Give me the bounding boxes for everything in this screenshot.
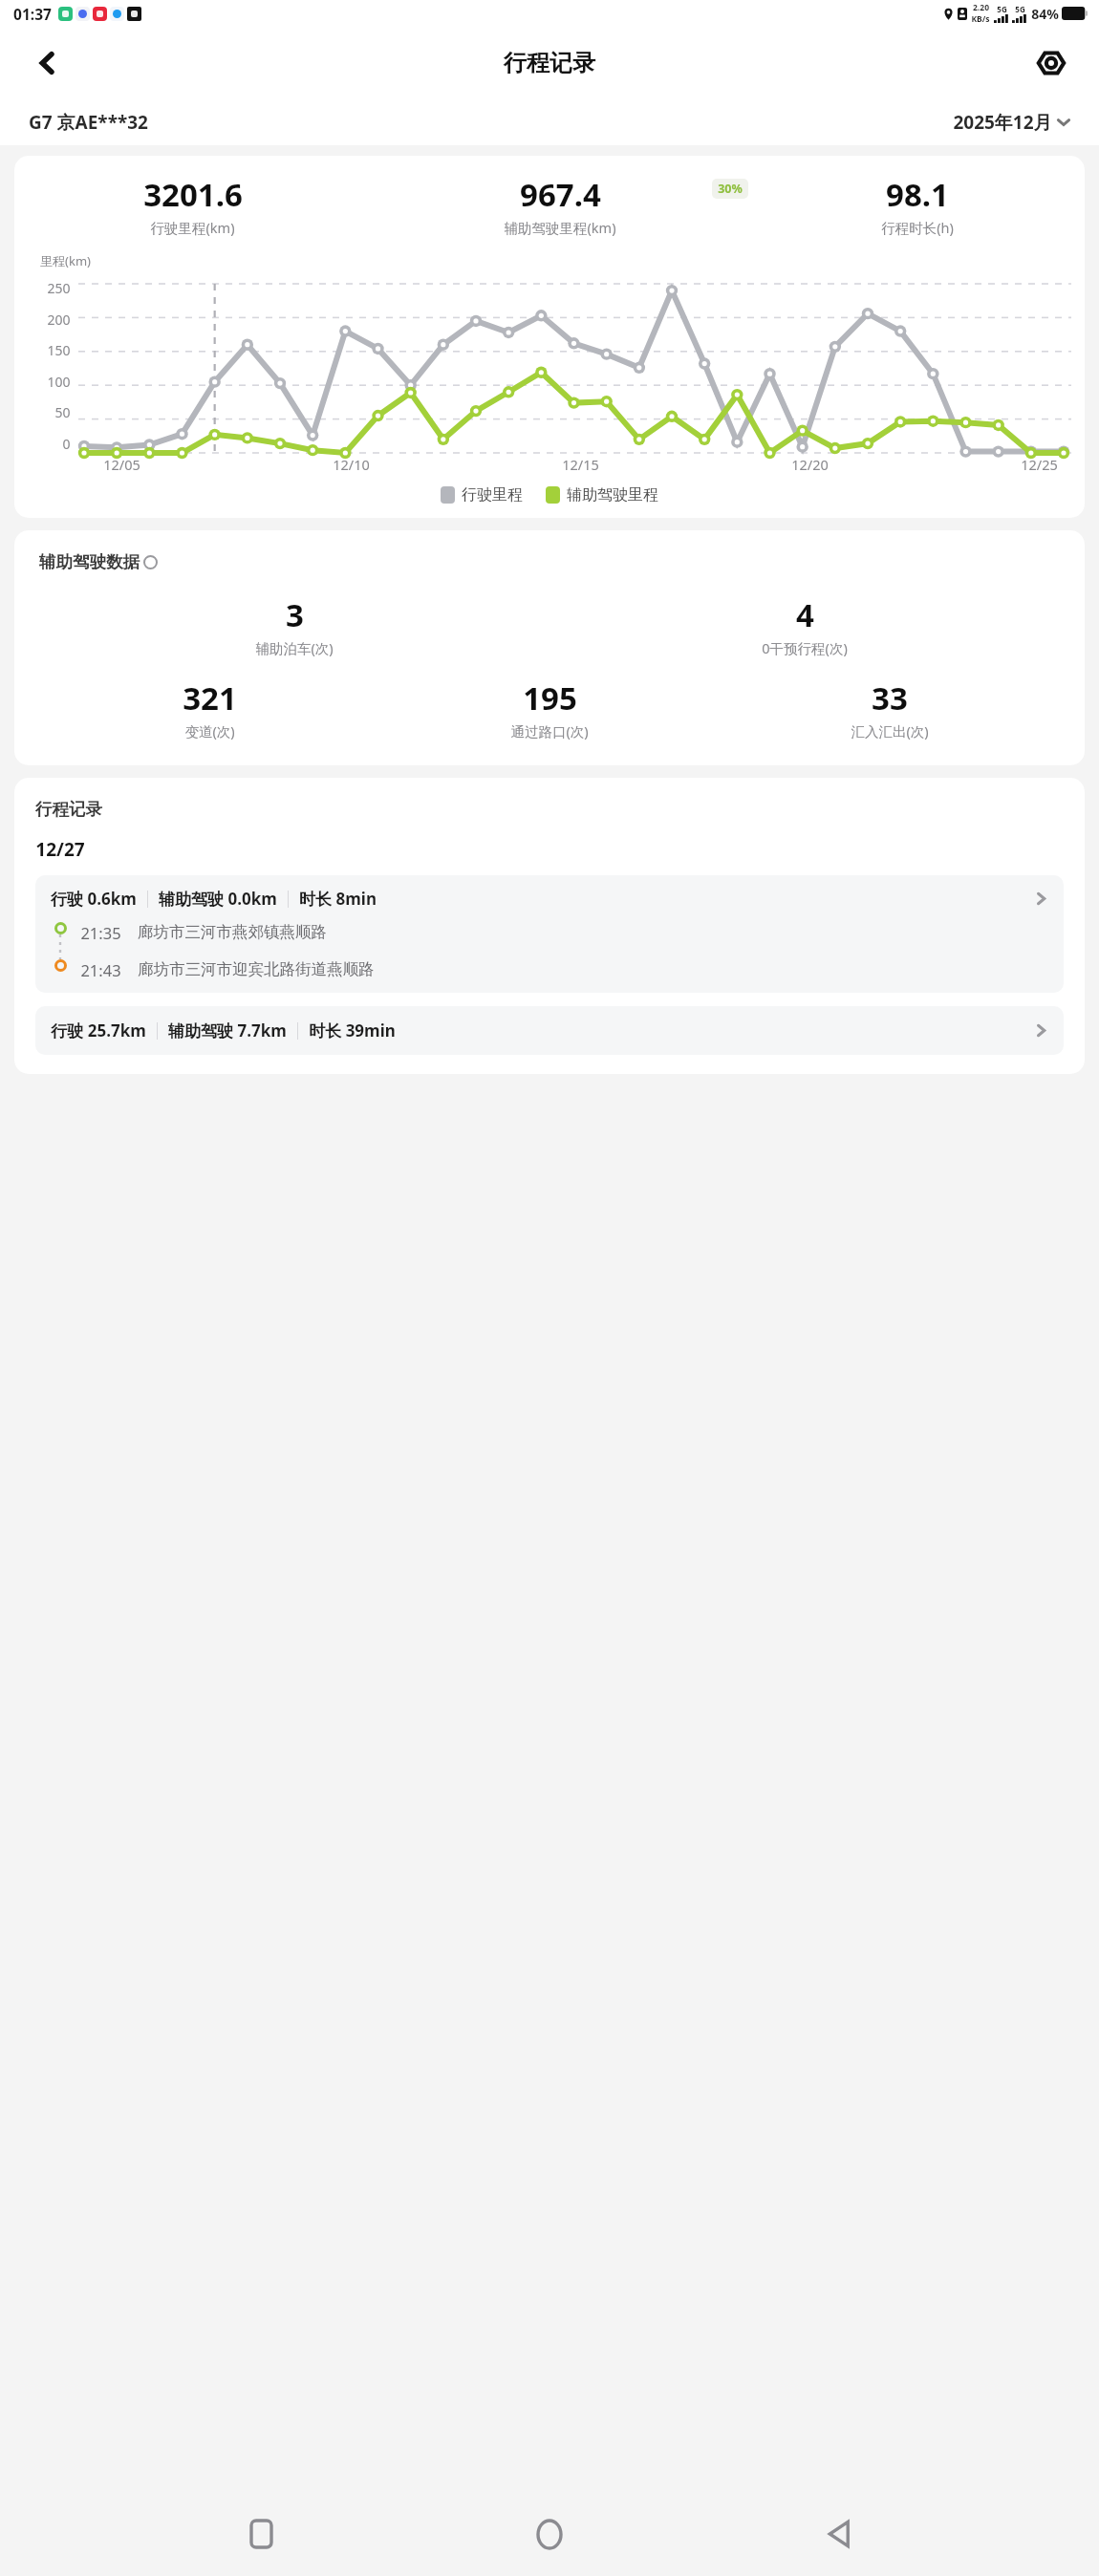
staticText: 变道(次) bbox=[184, 721, 235, 741]
staticText: 21:35 bbox=[80, 922, 121, 943]
staticText: 行驶 0.6km bbox=[51, 888, 137, 910]
staticText: 行驶里程(km) bbox=[150, 218, 235, 237]
staticText: 辅助驾驶 0.0km bbox=[159, 888, 277, 910]
staticText: 12/10 bbox=[333, 455, 370, 474]
staticText: 3201.6 bbox=[143, 173, 243, 216]
staticText: 84% bbox=[1031, 5, 1059, 23]
staticText: 廊坊市三河市燕郊镇燕顺路 bbox=[138, 922, 327, 942]
staticText: 辅助驾驶 7.7km bbox=[168, 1020, 287, 1041]
staticText: 98.1 bbox=[886, 173, 949, 216]
staticText: 行驶 25.7km bbox=[51, 1020, 146, 1041]
staticText: 195 bbox=[523, 676, 577, 719]
staticText: 321 bbox=[183, 676, 237, 719]
staticText: 100 bbox=[47, 373, 71, 391]
staticText: 12/27 bbox=[35, 837, 85, 862]
staticText: 250 bbox=[47, 279, 71, 297]
staticText: 12/20 bbox=[791, 455, 829, 474]
staticText: 0干预行程(次) bbox=[762, 638, 848, 657]
staticText: 967.4 bbox=[520, 173, 601, 216]
staticText: 行程时长(h) bbox=[881, 218, 954, 237]
staticText: 33 bbox=[872, 676, 908, 719]
button[interactable]: Recents bbox=[232, 2505, 290, 2563]
staticText: 廊坊市三河市迎宾北路街道燕顺路 bbox=[138, 959, 375, 979]
staticText: 辅助驾驶数据 bbox=[39, 551, 140, 572]
staticText: 21:43 bbox=[80, 959, 121, 980]
staticText: 2.20 bbox=[973, 2, 989, 13]
button[interactable]: Home bbox=[521, 2505, 578, 2563]
staticText: 辅助驾驶里程(km) bbox=[504, 218, 616, 237]
staticText: 时长 8min bbox=[299, 888, 377, 910]
staticText: 行程记录 bbox=[504, 49, 595, 77]
staticText: 0 bbox=[62, 435, 71, 453]
staticText: G7 京AE***32 bbox=[29, 110, 148, 135]
button[interactable]: Settings bbox=[1028, 40, 1074, 86]
staticText: 5G bbox=[1015, 4, 1025, 14]
button[interactable]: 行驶 25.7km bbox=[35, 1006, 1064, 1055]
staticText: 行驶里程 bbox=[462, 485, 523, 504]
staticText: 辅助泊车(次) bbox=[255, 638, 334, 657]
staticText: 200 bbox=[47, 311, 71, 329]
button[interactable]: 行驶 0.6km bbox=[35, 875, 1064, 993]
staticText: 150 bbox=[47, 341, 71, 359]
staticText: 01:37 bbox=[13, 4, 52, 24]
staticText: 2025年12月 bbox=[953, 110, 1052, 135]
button[interactable]: Back bbox=[810, 2505, 868, 2563]
staticText: 通过路口(次) bbox=[510, 721, 589, 741]
staticText: 里程(km) bbox=[40, 252, 91, 269]
button[interactable]: Back bbox=[25, 40, 71, 86]
staticText: 4 bbox=[796, 593, 814, 636]
staticText: 3 bbox=[286, 593, 304, 636]
staticText: 时长 39min bbox=[309, 1020, 396, 1041]
staticText: 5G bbox=[997, 4, 1007, 14]
button[interactable]: 2025年12月 bbox=[953, 110, 1070, 135]
staticText: KB/s bbox=[971, 13, 990, 25]
staticText: 12/25 bbox=[1021, 455, 1058, 474]
staticText: 50 bbox=[54, 403, 71, 421]
staticText: 12/05 bbox=[103, 455, 140, 474]
staticText: 行程记录 bbox=[35, 799, 102, 820]
staticText: 30% bbox=[718, 181, 743, 197]
staticText: 辅助驾驶里程 bbox=[567, 485, 658, 504]
staticText: 汇入汇出(次) bbox=[851, 721, 929, 741]
staticText: 12/15 bbox=[562, 455, 599, 474]
